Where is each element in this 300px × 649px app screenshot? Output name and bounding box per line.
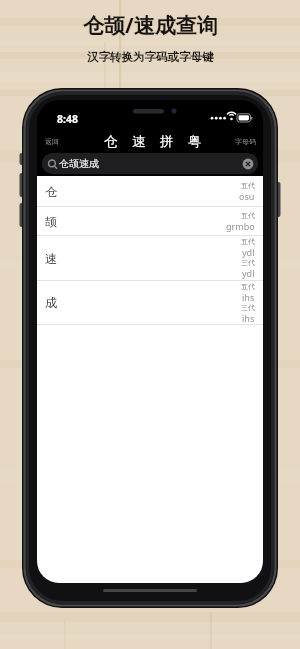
staticText: 五代 <box>241 282 255 291</box>
staticText: 速 <box>45 251 57 266</box>
staticText: 成 <box>45 295 57 310</box>
staticText: ydl <box>242 267 255 279</box>
staticText: 仓颉/速成查询 <box>83 11 218 40</box>
staticText: ihs <box>242 291 255 303</box>
button[interactable]: 拼 <box>160 133 174 150</box>
staticText: 五代 <box>241 181 255 190</box>
staticText: grmbo <box>226 220 255 232</box>
staticText: 拼 <box>160 133 174 150</box>
button[interactable]: 速 <box>37 236 263 281</box>
staticText: 返回 <box>45 137 59 146</box>
button[interactable]: 仓 <box>104 133 118 150</box>
button[interactable]: 返回 <box>45 137 59 146</box>
staticText: ihs <box>242 312 255 324</box>
button[interactable]: 速 <box>132 133 146 150</box>
button[interactable]: 仓颉速成 <box>42 153 258 174</box>
staticText: osu <box>239 190 255 202</box>
staticText: 三代 <box>241 303 255 312</box>
staticText: 字母码 <box>235 137 256 146</box>
staticText: 粤 <box>188 133 202 150</box>
button[interactable]: 字母码 <box>235 137 256 146</box>
button[interactable]: 颉 <box>37 207 263 236</box>
staticText: 五代 <box>241 211 255 220</box>
staticText: 速 <box>132 133 146 150</box>
button[interactable]: 粤 <box>188 133 202 150</box>
button[interactable]: 成 <box>37 281 263 325</box>
staticText: 8:48 <box>57 112 78 126</box>
staticText: 汉字转换为字码或字母键 <box>87 50 214 64</box>
staticText: 五代 <box>241 237 255 246</box>
staticText: ydl <box>242 246 255 258</box>
staticText: 仓 <box>45 184 57 199</box>
button[interactable]: 仓 <box>37 176 263 207</box>
staticText: 仓 <box>104 133 118 150</box>
staticText: 仓颉速成 <box>59 157 99 170</box>
staticText: 三代 <box>241 258 255 267</box>
staticText: 颉 <box>45 214 57 229</box>
